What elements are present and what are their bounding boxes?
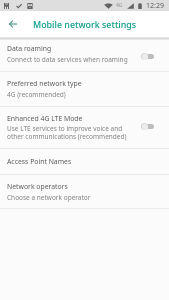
staticText: Enhanced 4G LTE Mode bbox=[7, 114, 83, 123]
staticText: 4G bbox=[116, 2, 123, 9]
button[interactable]: Preferred network type bbox=[0, 72, 169, 107]
button[interactable]: Network operators bbox=[0, 175, 169, 209]
button[interactable]: Enhanced 4G LTE Mode bbox=[0, 107, 169, 149]
button[interactable]: Back bbox=[0, 11, 26, 37]
staticText: 4G (recommended) bbox=[7, 90, 66, 99]
button[interactable]: Access Point Names bbox=[0, 149, 169, 175]
staticText: 12:29 bbox=[146, 1, 164, 11]
staticText: Mobile network settings bbox=[33, 18, 137, 30]
staticText: Connect to data services when roaming bbox=[7, 55, 128, 64]
staticText: Data roaming bbox=[7, 44, 52, 53]
button[interactable]: Data roaming bbox=[0, 40, 169, 72]
staticText: Network operators bbox=[7, 182, 68, 191]
staticText: Access Point Names bbox=[7, 157, 72, 166]
staticText: Preferred network type bbox=[7, 79, 82, 88]
staticText: Use LTE services to improve voice and ot… bbox=[7, 124, 127, 141]
staticText: Choose a network operator bbox=[7, 193, 91, 202]
